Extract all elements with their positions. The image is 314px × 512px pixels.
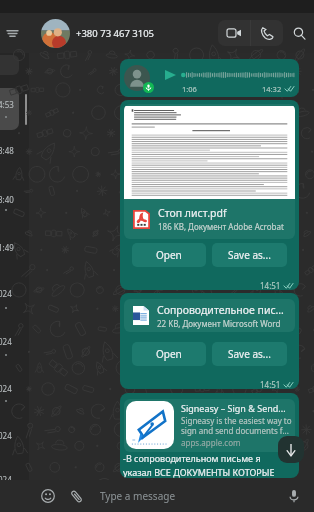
staticText: 1:49 (0, 242, 14, 253)
button[interactable]: Chat +380 73 467 3105 (0, 88, 19, 130)
staticText: +380 73 467 3105 (76, 27, 155, 40)
staticText: Open (156, 347, 182, 361)
staticText: 22 KB, Документ Microsoft Word (157, 318, 281, 329)
staticText: 024 (0, 430, 12, 441)
staticText: Стоп лист.pdf (158, 206, 227, 220)
staticText: Open (156, 248, 182, 262)
staticText: Signeasy – Sign & Send... (181, 402, 286, 414)
button[interactable]: Play voice message (165, 70, 176, 80)
button[interactable]: Signeasy – Sign & Send... (120, 393, 299, 478)
button[interactable]: Сопроводительное письмо... (120, 293, 299, 389)
staticText: Save as... (228, 347, 271, 361)
button[interactable]: Save as... (212, 243, 287, 267)
staticText: 024 (0, 336, 12, 347)
staticText: 3:48 (0, 145, 14, 156)
staticText: 024 (0, 474, 12, 485)
staticText: Save as... (228, 248, 271, 262)
button[interactable]: Open (132, 243, 206, 267)
staticText: 024 (0, 383, 12, 394)
staticText: 14:51 (260, 280, 281, 290)
staticText: 14:51 (260, 379, 281, 389)
button[interactable]: Save as... (212, 342, 287, 366)
staticText: 024 (0, 288, 12, 299)
button[interactable]: Contact avatar (41, 19, 70, 48)
button[interactable]: Play voice message (120, 59, 299, 97)
button[interactable]: Стоп лист.pdf (120, 100, 299, 290)
button[interactable]: Record voice message (282, 484, 306, 508)
staticText: Signeasy is the easiest way to sign and … (181, 415, 293, 436)
button[interactable]: Attach file (64, 484, 88, 508)
staticText: 186 KB, Документ Adobe Acrobat (158, 221, 284, 232)
staticText: -В сопроводительном письме я указал ВСЕ … (123, 452, 275, 478)
button[interactable]: Menu (2, 23, 22, 43)
staticText: 3:40 (0, 194, 14, 205)
staticText: apps.apple.com (181, 437, 241, 448)
staticText: 1:06 (182, 84, 197, 94)
button[interactable]: Search (286, 20, 312, 46)
staticText: Type a message (100, 489, 176, 503)
button[interactable]: Voice call (251, 20, 283, 46)
staticText: 4:53 (0, 99, 14, 110)
staticText: Сопроводительное письмо... (157, 303, 289, 317)
button[interactable]: Emoji (36, 484, 60, 508)
button[interactable]: Video call (218, 20, 250, 46)
staticText: 14:32 (262, 84, 282, 94)
button[interactable]: Scroll to bottom (278, 436, 304, 463)
button[interactable]: Open (132, 342, 206, 366)
